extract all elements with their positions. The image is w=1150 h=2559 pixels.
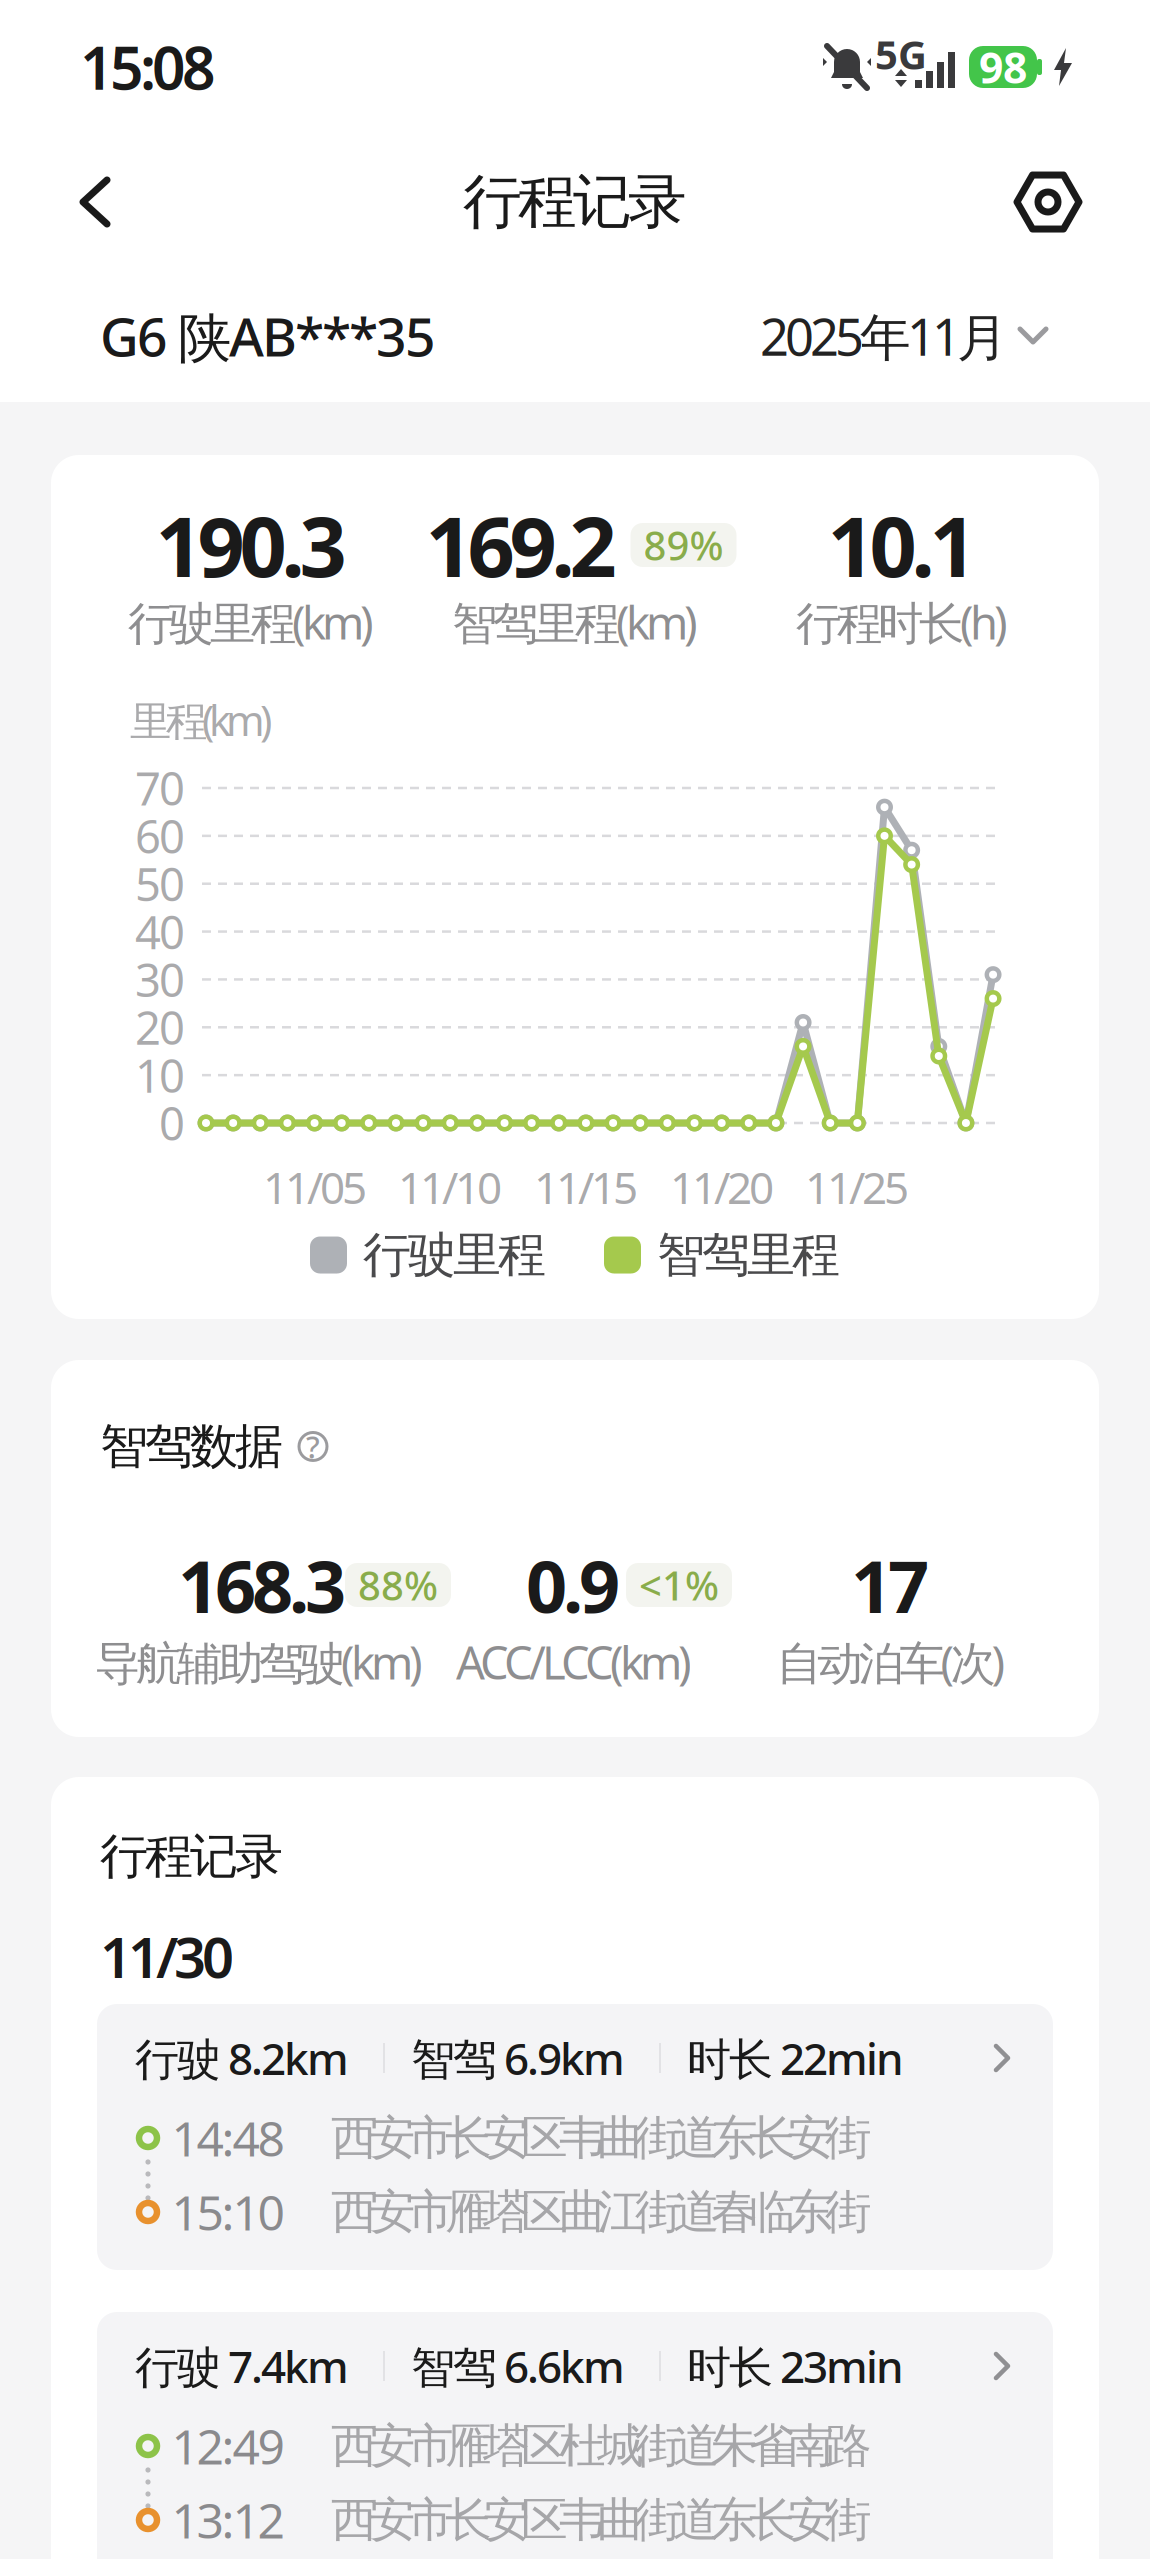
- staticText: 西安市长安区韦曲街道东长安街: [331, 2109, 872, 2167]
- staticText: 智驾数据: [100, 1417, 283, 1476]
- staticText: 10: [135, 1045, 185, 1105]
- staticText: 98: [979, 39, 1027, 95]
- staticText: 11/10: [398, 1158, 502, 1216]
- staticText: 行驶里程: [363, 1225, 546, 1284]
- staticText: 西安市雁塔区杜城街道朱雀南路: [331, 2417, 872, 2475]
- staticText: 30: [135, 949, 185, 1009]
- button[interactable]: Back: [77, 176, 113, 228]
- staticText: 169.2: [425, 490, 616, 600]
- staticText: 自动泊车(次): [776, 1632, 1005, 1692]
- staticText: <1%: [639, 1558, 719, 1611]
- staticText: 行驶 7.4km: [135, 2337, 349, 2395]
- staticText: 190.3: [155, 490, 346, 600]
- staticText: 时长 23min: [687, 2337, 904, 2395]
- staticText: 智驾里程(km): [452, 592, 698, 652]
- staticText: 导航辅助驾驶(km): [95, 1632, 423, 1692]
- staticText: 11/25: [805, 1158, 909, 1216]
- staticText: 11/05: [263, 1158, 367, 1216]
- staticText: 70: [135, 758, 185, 818]
- staticText: 50: [135, 854, 185, 914]
- staticText: 12:49: [171, 2414, 284, 2478]
- staticText: 里程(km): [130, 693, 272, 747]
- staticText: 5G: [875, 27, 927, 80]
- button[interactable]: 智驾数据说明: [297, 1430, 329, 1462]
- staticText: 0.9: [526, 1537, 620, 1633]
- staticText: 20: [135, 997, 185, 1057]
- staticText: 40: [135, 901, 185, 962]
- staticText: 行程记录: [463, 166, 687, 238]
- staticText: 89%: [643, 518, 723, 571]
- button[interactable]: 2025年11月: [760, 302, 1048, 370]
- staticText: 11/15: [534, 1158, 638, 1216]
- staticText: 智驾里程: [657, 1225, 840, 1284]
- staticText: 168.3: [178, 1537, 346, 1633]
- staticText: 行程记录: [100, 1827, 283, 1886]
- staticText: 11/20: [670, 1158, 774, 1216]
- button[interactable]: Settings: [1013, 170, 1083, 234]
- staticText: 60: [135, 806, 185, 866]
- staticText: 11/30: [100, 1919, 234, 1993]
- staticText: 15:08: [80, 28, 216, 106]
- staticText: 行程时长(h): [796, 592, 1008, 652]
- staticText: 17: [851, 1537, 929, 1633]
- staticText: 智驾 6.9km: [411, 2029, 625, 2087]
- staticText: 13:12: [171, 2488, 284, 2552]
- staticText: 2025年11月: [760, 302, 1008, 370]
- staticText: 智驾 6.6km: [411, 2337, 625, 2395]
- staticText: 行驶 8.2km: [135, 2029, 349, 2087]
- staticText: ACC/LCC(km): [456, 1632, 692, 1692]
- staticText: G6 陕AB***35: [100, 300, 436, 372]
- staticText: ?: [306, 1426, 320, 1467]
- staticText: 10.1: [827, 490, 976, 600]
- staticText: 88%: [358, 1558, 438, 1611]
- staticText: 14:48: [171, 2106, 284, 2170]
- staticText: 西安市雁塔区曲江街道春临东街: [331, 2183, 872, 2241]
- button[interactable]: 行驶 7.4km: [97, 2312, 1053, 2559]
- staticText: 行驶里程(km): [128, 592, 374, 652]
- staticText: 0: [159, 1093, 185, 1153]
- staticText: 15:10: [171, 2180, 284, 2244]
- button[interactable]: 行驶 8.2km: [97, 2004, 1053, 2270]
- staticText: 时长 22min: [687, 2029, 904, 2087]
- staticText: 西安市长安区韦曲街道东长安街: [331, 2491, 872, 2549]
